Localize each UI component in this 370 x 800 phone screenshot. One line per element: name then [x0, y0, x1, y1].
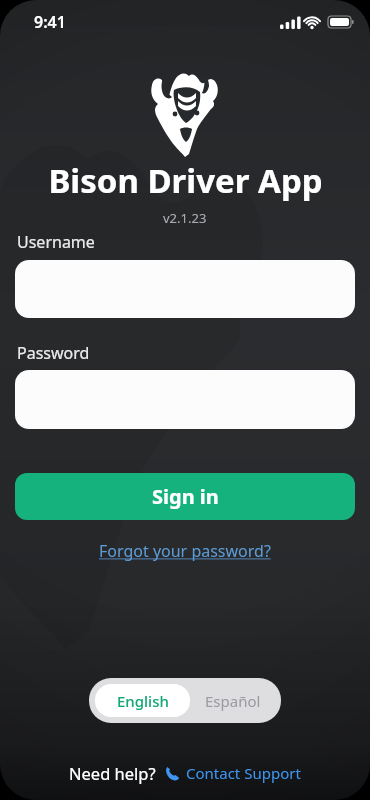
staticText: Sign in: [152, 483, 219, 510]
staticText: Español: [205, 691, 261, 711]
button[interactable]: Sign in: [15, 473, 355, 520]
staticText: Need help?: [69, 762, 156, 784]
staticText: 9:41: [34, 11, 66, 33]
staticText: English: [117, 691, 169, 711]
button[interactable]: English: [95, 684, 190, 717]
button[interactable]: Forgot your password?: [99, 540, 271, 562]
button[interactable]: [15, 370, 355, 429]
staticText: v2.1.23: [163, 209, 207, 227]
button[interactable]: [15, 260, 355, 318]
staticText: Bison Driver App: [48, 158, 323, 203]
button[interactable]: Contact Support: [164, 763, 301, 783]
staticText: Username: [17, 231, 95, 253]
button[interactable]: Español: [190, 684, 275, 717]
staticText: Contact Support: [186, 763, 301, 783]
staticText: Password: [17, 342, 90, 364]
